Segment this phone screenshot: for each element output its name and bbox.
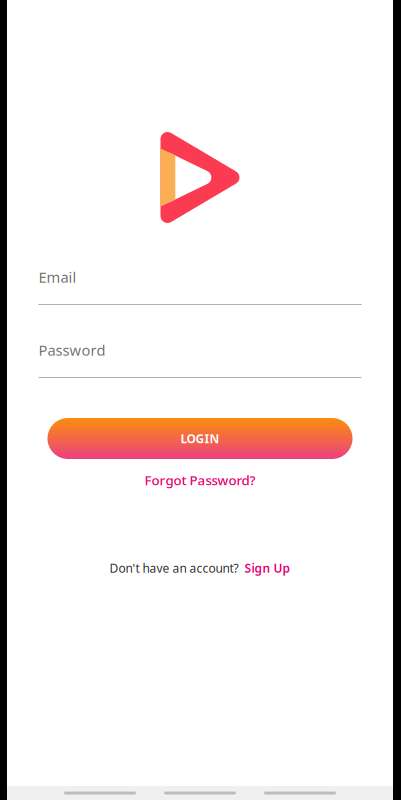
staticText: Don't have an account? — [109, 560, 238, 576]
button[interactable]: Forgot Password? — [144, 472, 255, 488]
staticText: Sign Up — [244, 560, 290, 576]
button[interactable]: Sign Up — [244, 560, 290, 576]
staticText: Email — [38, 267, 76, 287]
staticText: Password — [38, 340, 105, 360]
button[interactable]: LOGIN — [47, 418, 352, 459]
staticText: LOGIN — [180, 430, 219, 446]
staticText: Forgot Password? — [144, 471, 255, 489]
